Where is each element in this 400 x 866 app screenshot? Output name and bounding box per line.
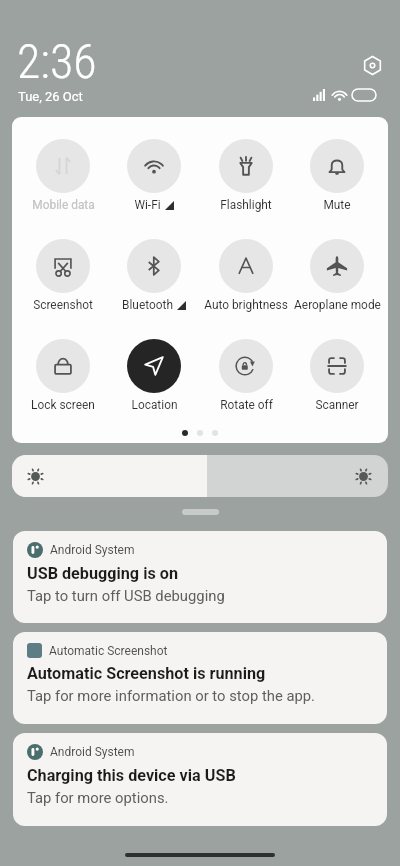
staticText: Wi-Fi — [134, 198, 161, 212]
staticText: Mobile data — [32, 198, 95, 212]
button[interactable]: Mute — [292, 139, 383, 217]
button[interactable] — [12, 455, 388, 497]
staticText: 2:36 — [17, 33, 97, 89]
button[interactable]: Location — [109, 339, 200, 417]
button[interactable]: Android System — [13, 733, 387, 826]
button[interactable]: Automatic Screenshot — [13, 632, 387, 724]
staticText: Auto brightness — [204, 298, 288, 312]
staticText: Location — [131, 398, 178, 412]
staticText: Mute — [323, 198, 351, 212]
staticText: Charging this device via USB — [27, 766, 236, 785]
staticText: Tue, 26 Oct — [18, 89, 83, 104]
button[interactable]: Screenshot — [18, 239, 109, 317]
button[interactable]: Rotate off — [201, 339, 292, 417]
staticText: Tap for more options. — [27, 789, 169, 806]
button[interactable]: Aeroplane mode — [292, 239, 383, 317]
staticText: Automatic Screenshot — [49, 644, 168, 658]
staticText: Aeroplane mode — [294, 298, 381, 312]
staticText: Screenshot — [33, 298, 93, 312]
staticText: Tap to turn off USB debugging — [27, 587, 225, 604]
staticText: Flashlight — [220, 198, 272, 212]
button[interactable]: Settings — [357, 50, 387, 80]
staticText: Scanner — [315, 398, 359, 412]
staticText: Automatic Screenshot is running — [27, 664, 266, 683]
button[interactable]: Flashlight — [201, 139, 292, 217]
staticText: Tap for more information or to stop the … — [27, 687, 315, 704]
staticText: Android System — [50, 745, 135, 759]
button[interactable]: Bluetooth — [109, 239, 200, 317]
button[interactable]: Android System — [13, 531, 387, 623]
button[interactable]: Wi-Fi — [109, 139, 200, 217]
staticText: USB debugging is on — [27, 564, 178, 583]
staticText: Lock screen — [31, 398, 95, 412]
staticText: Bluetooth — [122, 298, 173, 312]
button[interactable]: Lock screen — [18, 339, 109, 417]
button[interactable]: Mobile data — [18, 139, 109, 217]
staticText: Android System — [50, 543, 135, 557]
staticText: Rotate off — [220, 398, 273, 412]
button[interactable]: Auto brightness — [201, 239, 292, 317]
button[interactable]: Scanner — [292, 339, 383, 417]
